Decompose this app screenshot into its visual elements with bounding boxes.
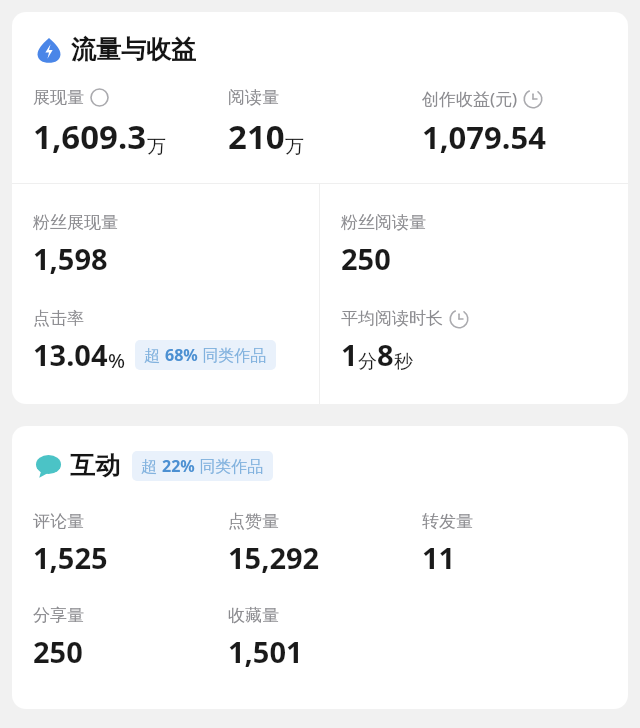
button[interactable]: 互动 [36,450,628,481]
staticText: 22% [162,455,195,477]
staticText: 分享量 [33,605,84,626]
button[interactable]: History [523,89,543,109]
staticText: 转发量 [422,511,473,532]
staticText: 收藏量 [228,605,279,626]
staticText: 平均阅读时长 [341,308,443,329]
staticText: 250 [341,239,391,278]
staticText: 超 [141,455,162,477]
staticText: 250 [33,632,83,671]
staticText: 流量与收益 [71,34,196,65]
staticText: 11 [422,538,456,577]
staticText: 秒 [394,350,413,374]
staticText: 1,598 [33,239,108,278]
staticText: 13.04 [33,335,108,374]
staticText: 分 [358,350,377,374]
staticText: 万 [147,135,166,159]
button[interactable]: Help [90,88,109,107]
staticText: 粉丝展现量 [33,212,118,233]
staticText: 超 [144,344,165,366]
staticText: 粉丝阅读量 [341,212,426,233]
staticText: 1 [341,335,358,374]
button[interactable]: 流量与收益 [36,34,628,65]
staticText: 点赞量 [228,511,279,532]
staticText: 210 [228,114,285,159]
staticText: 68% [165,344,198,366]
staticText: % [108,347,126,374]
staticText: 同类作品 [195,455,264,477]
staticText: 阅读量 [228,87,279,108]
staticText: 1,079.54 [422,116,546,158]
button[interactable]: 超 [144,344,267,366]
staticText: 同类作品 [198,344,267,366]
staticText: 展现量 [33,87,84,108]
staticText: 15,292 [228,538,320,577]
staticText: 1,501 [228,632,303,671]
button[interactable]: 超 [141,455,264,477]
staticText: 1,609.3 [33,114,147,159]
staticText: 评论量 [33,511,84,532]
staticText: 8 [377,335,394,374]
staticText: 点击率 [33,308,84,329]
button[interactable]: History [449,309,469,329]
staticText: 万 [285,135,304,159]
staticText: 互动 [70,450,120,481]
staticText: 创作收益(元) [422,87,518,110]
staticText: 1,525 [33,538,108,577]
